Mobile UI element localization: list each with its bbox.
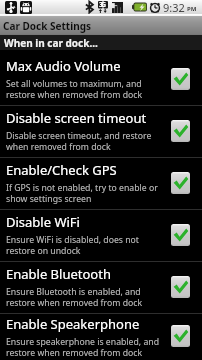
button[interactable]: Enable Bluetooth — [0, 262, 202, 313]
button[interactable]: Toggle option — [171, 325, 190, 347]
staticText: PM — [187, 5, 197, 13]
staticText: Max Audio Volume — [6, 57, 121, 75]
button[interactable]: Enable Speakerphone — [0, 314, 202, 360]
staticText: 9:32 — [163, 0, 185, 14]
staticText: Ensure WiFi is disabled, does not restor… — [6, 234, 140, 257]
staticText: Ensure speakerphone is enabled, and rest… — [6, 336, 160, 359]
button[interactable]: Max Audio Volume — [0, 54, 202, 105]
staticText: Ensure Bluetooth is enabled, and restore… — [6, 286, 143, 309]
staticText: When in car dock... — [4, 36, 98, 50]
button[interactable]: Disable screen timeout — [0, 106, 202, 157]
button[interactable]: Toggle option — [171, 276, 190, 298]
staticText: Enable Speakerphone — [6, 315, 140, 333]
button[interactable]: Disable WiFi — [0, 210, 202, 261]
button[interactable]: Toggle option — [171, 68, 190, 90]
staticText: Set all volumes to maximum, and restore … — [6, 78, 143, 101]
staticText: Disable screen timeout — [6, 109, 147, 127]
staticText: Enable/Check GPS — [6, 161, 117, 179]
staticText: Disable screen timeout, and restore when… — [6, 130, 152, 153]
button[interactable]: Enable/Check GPS — [0, 158, 202, 209]
button[interactable]: Toggle option — [171, 172, 190, 194]
staticText: 3 — [99, 0, 104, 10]
button[interactable]: Toggle option — [171, 224, 190, 246]
staticText: G — [101, 0, 107, 10]
staticText: If GPS is not enabled, try to enable or … — [6, 182, 158, 205]
button[interactable]: Toggle option — [171, 120, 190, 142]
staticText: Disable WiFi — [6, 213, 80, 231]
staticText: Enable Bluetooth — [6, 265, 111, 283]
staticText: Car Dock Settings — [3, 19, 91, 33]
